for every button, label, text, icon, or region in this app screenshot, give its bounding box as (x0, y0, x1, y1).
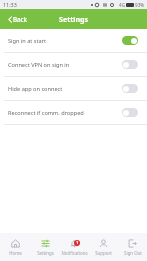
staticText: 93% (135, 2, 145, 8)
button[interactable]: Sign Out (118, 233, 147, 261)
staticText: Connect VPN on sign in (8, 61, 70, 69)
button[interactable]: Connect VPN on sign in (0, 53, 147, 76)
staticText: Sign Out (124, 250, 142, 256)
staticText: Hide app on connect (8, 85, 63, 93)
staticText: Settings (59, 14, 89, 24)
staticText: Home (9, 250, 22, 256)
staticText: Support (95, 250, 112, 256)
staticText: 11:33 (3, 1, 17, 8)
staticText: Back (13, 15, 28, 23)
staticText: Notifications (61, 250, 88, 256)
button[interactable]: Support (89, 233, 118, 261)
staticText: 4G (119, 2, 125, 8)
staticText: Settings (37, 250, 54, 256)
button[interactable]: Notifications (60, 233, 89, 261)
staticText: 1 (76, 240, 79, 246)
button[interactable]: Home (0, 233, 30, 261)
staticText: Reconnect if comm. dropped (8, 109, 84, 117)
button[interactable]: Hide app on connect (0, 77, 147, 100)
button[interactable]: Settings (30, 233, 60, 261)
button[interactable]: Reconnect if comm. dropped (0, 101, 147, 124)
button[interactable]: Back (0, 9, 34, 29)
button[interactable]: Sign in at start (0, 29, 147, 52)
staticText: Sign in at start (8, 37, 46, 45)
